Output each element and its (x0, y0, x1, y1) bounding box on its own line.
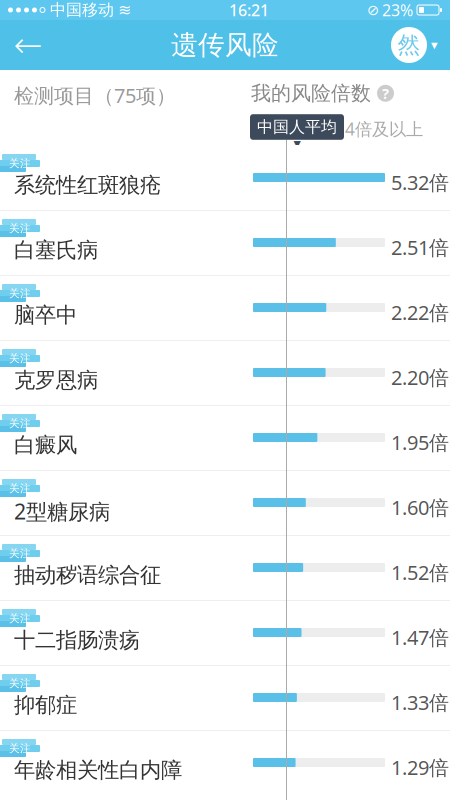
button[interactable]: 关注 (0, 665, 450, 730)
staticText: ← (13, 25, 42, 65)
staticText: 关注 (9, 222, 31, 235)
staticText: 1.33倍 (391, 689, 449, 716)
staticText: 脑卒中 (14, 302, 77, 328)
staticText: ≋ (118, 1, 131, 19)
button[interactable]: 关注 (0, 405, 450, 470)
staticText: 16:21 (229, 0, 269, 21)
button[interactable]: 关注 (0, 730, 450, 795)
staticText: 1.29倍 (391, 754, 449, 781)
button[interactable]: 关注 (0, 600, 450, 665)
staticText: 关注 (9, 677, 31, 690)
button[interactable]: 关注 (0, 340, 450, 405)
button[interactable]: 关注 (0, 145, 450, 210)
staticText: ▾ (431, 37, 438, 52)
staticText: 年龄相关性白内障 (14, 757, 182, 783)
staticText: 克罗恩病 (14, 367, 98, 393)
staticText: 关注 (9, 547, 31, 560)
staticText: 5.32倍 (391, 169, 449, 196)
button[interactable]: 关注 (0, 210, 450, 275)
button[interactable]: 关注 (0, 535, 450, 600)
staticText: 2.22倍 (391, 299, 449, 326)
staticText: 关注 (9, 742, 31, 755)
staticText: 关注 (9, 417, 31, 430)
staticText: 遗传风险 (171, 29, 279, 61)
button[interactable]: 账户菜单 (391, 20, 450, 70)
staticText: 2型糖尿病 (14, 497, 110, 525)
staticText: 23% (382, 0, 413, 21)
staticText: 2.20倍 (391, 364, 449, 391)
staticText: 4倍及以上 (345, 117, 423, 140)
staticText: 检测项目（75项） (14, 82, 176, 109)
staticText: ? (382, 83, 389, 103)
staticText: 中国人平均 (257, 117, 337, 137)
staticText: 关注 (9, 157, 31, 170)
staticText: 关注 (9, 612, 31, 625)
staticText: 系统性红斑狼疮 (14, 172, 161, 198)
staticText: 1.52倍 (391, 559, 449, 586)
staticText: 关注 (9, 287, 31, 300)
staticText: 1.47倍 (391, 624, 449, 651)
staticText: 中国移动 (50, 0, 114, 20)
staticText: 然 (397, 31, 420, 59)
staticText: 我的风险倍数 (251, 81, 371, 106)
button[interactable]: 关注 (0, 470, 450, 535)
staticText: ▾ (293, 135, 300, 152)
button[interactable]: 返回 (0, 20, 56, 70)
staticText: 白塞氏病 (14, 237, 98, 263)
staticText: 十二指肠溃疡 (14, 627, 140, 653)
staticText: ⊘ (367, 2, 379, 18)
button[interactable]: 风险倍数说明 (377, 83, 394, 103)
staticText: 1.60倍 (391, 494, 449, 521)
staticText: 抽动秽语综合征 (14, 562, 161, 588)
staticText: 抑郁症 (14, 692, 77, 718)
staticText: 关注 (9, 352, 31, 365)
button[interactable]: 关注 (0, 275, 450, 340)
staticText: 白癜风 (14, 432, 77, 458)
staticText: 1.95倍 (391, 429, 449, 456)
staticText: 关注 (9, 482, 31, 495)
staticText: 2.51倍 (391, 234, 449, 261)
